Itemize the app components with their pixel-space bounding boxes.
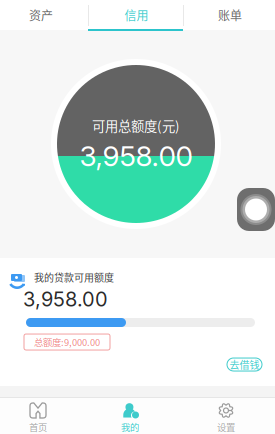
staticText: 我的 — [121, 420, 139, 434]
staticText: 资产 — [29, 6, 53, 24]
button[interactable]: 首页 — [0, 397, 84, 434]
staticText: 3,958.00 — [23, 287, 108, 311]
staticText: 设置 — [217, 420, 235, 434]
button[interactable]: Assistive Touch — [237, 188, 275, 231]
staticText: 首页 — [29, 420, 47, 434]
staticText: 我的贷款可用额度 — [34, 270, 114, 284]
staticText: 去借钱 — [229, 357, 259, 372]
staticText: 总额度:9,000.00 — [34, 335, 100, 349]
button[interactable]: 设置 — [180, 397, 272, 434]
button[interactable]: 我的 — [84, 397, 176, 434]
button[interactable]: 信用 — [88, 0, 183, 30]
button[interactable]: 账单 — [183, 0, 275, 30]
staticText: 3,958.00 — [79, 139, 192, 173]
button[interactable]: 去借钱 — [227, 358, 262, 371]
button[interactable]: 资产 — [0, 0, 88, 30]
staticText: 可用总额度(元) — [92, 116, 180, 135]
staticText: 信用 — [124, 6, 148, 24]
staticText: 账单 — [218, 6, 242, 24]
